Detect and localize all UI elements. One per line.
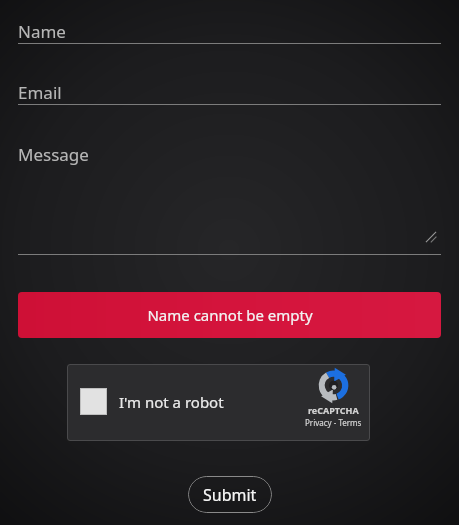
staticText: Email: [18, 81, 62, 104]
button[interactable]: I'm not a robot checkbox: [80, 388, 107, 415]
staticText: Name: [18, 20, 66, 43]
staticText: Message: [18, 143, 89, 166]
button[interactable]: Email: [18, 81, 441, 105]
button[interactable]: Name cannot be empty: [18, 292, 441, 338]
button[interactable]: Message: [18, 143, 441, 255]
staticText: reCAPTCHA: [308, 404, 359, 416]
button[interactable]: Submit: [188, 476, 272, 513]
other: reCAPTCHA logo: [318, 370, 349, 401]
staticText: Name cannot be empty: [147, 305, 313, 325]
staticText: Privacy - Terms: [305, 417, 362, 428]
button[interactable]: Name: [18, 20, 441, 44]
staticText: Submit: [203, 484, 257, 506]
staticText: I'm not a robot: [119, 392, 224, 412]
